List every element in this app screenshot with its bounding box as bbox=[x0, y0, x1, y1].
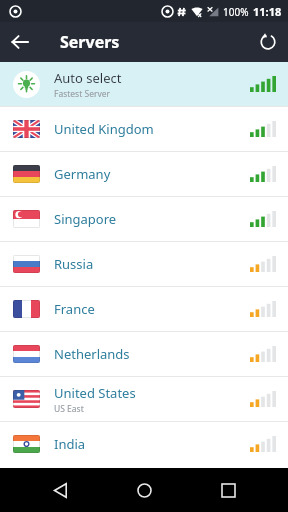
button[interactable]: Germany bbox=[0, 152, 288, 196]
button[interactable]: Back bbox=[36, 468, 84, 512]
staticText: 11:18 bbox=[253, 4, 282, 19]
staticText: United Kingdom bbox=[54, 120, 154, 138]
button[interactable]: Netherlands bbox=[0, 332, 288, 376]
button[interactable]: France bbox=[0, 287, 288, 331]
staticText: US East bbox=[54, 403, 84, 415]
button[interactable]: Back bbox=[0, 22, 40, 62]
staticText: United States bbox=[54, 384, 136, 402]
button[interactable]: Auto select bbox=[0, 62, 288, 106]
staticText: Servers bbox=[60, 31, 120, 53]
button[interactable]: India bbox=[0, 422, 288, 466]
staticText: India bbox=[54, 435, 86, 453]
button[interactable]: Russia bbox=[0, 242, 288, 286]
button[interactable]: Recent apps bbox=[204, 468, 252, 512]
staticText: Netherlands bbox=[54, 345, 130, 363]
button[interactable]: Refresh bbox=[248, 22, 288, 62]
staticText: Singapore bbox=[54, 210, 117, 228]
button[interactable]: United Kingdom bbox=[0, 107, 288, 151]
staticText: Germany bbox=[54, 165, 111, 183]
button[interactable]: United States bbox=[0, 377, 288, 421]
staticText: Fastest Server bbox=[54, 88, 111, 100]
button[interactable]: Home bbox=[120, 468, 168, 512]
staticText: Auto select bbox=[54, 69, 122, 87]
staticText: 100% bbox=[223, 5, 249, 19]
button[interactable]: Singapore bbox=[0, 197, 288, 241]
staticText: France bbox=[54, 300, 95, 318]
staticText: Russia bbox=[54, 255, 94, 273]
